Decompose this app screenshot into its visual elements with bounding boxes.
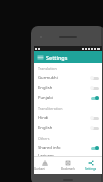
button[interactable]: Off <box>90 75 99 81</box>
staticText: Gurmukhi <box>38 75 90 81</box>
staticText: Gurbani Searcher <box>34 167 56 171</box>
button[interactable]: Gurbani Searcher <box>34 158 56 173</box>
button[interactable]: English <box>34 123 102 133</box>
button[interactable]: Larivaar <box>34 153 102 156</box>
button[interactable]: On <box>90 145 99 151</box>
staticText: Transliteration <box>38 106 63 111</box>
staticText: Bookmark <box>61 167 75 171</box>
staticText: Shared info <box>38 145 90 151</box>
staticText: Hindi <box>38 115 90 121</box>
button[interactable]: On <box>90 95 99 101</box>
button[interactable]: Open navigation menu <box>37 54 44 61</box>
staticText: Punjabi <box>38 95 90 101</box>
button[interactable]: Shared info <box>34 143 102 153</box>
button[interactable]: Gurmukhi <box>34 73 102 83</box>
staticText: Settings <box>46 54 68 61</box>
button[interactable]: Hindi <box>34 113 102 123</box>
button[interactable]: Off <box>90 125 99 131</box>
button[interactable]: Off <box>90 115 99 121</box>
button[interactable]: Bookmark <box>56 158 79 173</box>
button[interactable]: English <box>34 83 102 93</box>
staticText: English <box>38 125 90 131</box>
button[interactable]: Punjabi <box>34 93 102 103</box>
staticText: English <box>38 85 90 91</box>
staticText: Larivaar <box>38 153 99 156</box>
staticText: Translation <box>38 66 57 71</box>
staticText: Others <box>38 136 50 141</box>
button[interactable]: Settings <box>79 158 102 173</box>
staticText: Settings <box>85 167 97 171</box>
button[interactable]: Off <box>90 85 99 91</box>
